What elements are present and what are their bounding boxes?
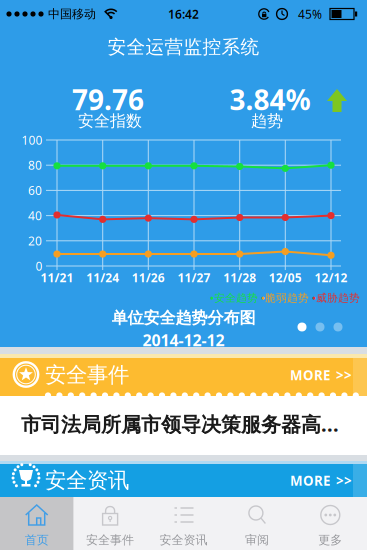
staticText: 2014-12-12 [142, 329, 224, 351]
staticText: 45% [298, 6, 322, 22]
staticText: 11/26 [132, 269, 165, 285]
staticText: 安全事件 [86, 533, 134, 547]
staticText: 首页 [25, 533, 49, 547]
staticText: 单位安全趋势分布图 [111, 308, 255, 328]
staticText: 安全资讯 [159, 533, 207, 547]
staticText: 79.76 [72, 81, 144, 118]
staticText: •威胁趋势 [312, 290, 360, 305]
button[interactable]: 首页 [0, 497, 73, 550]
staticText: 0 [35, 258, 42, 274]
staticText: 11/27 [177, 269, 210, 285]
staticText: MORE >> [290, 366, 352, 384]
button[interactable]: 审阅 [220, 497, 294, 550]
staticText: 11/21 [40, 269, 73, 285]
staticText: 中国移动 [48, 7, 96, 21]
staticText: 审阅 [245, 533, 269, 547]
button[interactable]: 安全资讯 [0, 464, 367, 497]
staticText: 16:42 [168, 6, 199, 22]
staticText: 11/24 [86, 269, 119, 285]
staticText: 12/12 [314, 269, 347, 285]
staticText: 安全运营监控系统 [107, 35, 259, 58]
staticText: 12/05 [269, 269, 302, 285]
staticText: MORE >> [290, 472, 352, 489]
staticText: 60 [28, 182, 42, 198]
staticText: 安全资讯 [45, 467, 129, 494]
staticText: 更多 [318, 533, 342, 547]
staticText: 市司法局所属市领导决策服务器高... [21, 411, 339, 437]
staticText: •脆弱趋势 [261, 290, 309, 305]
staticText: 安全指数 [78, 111, 142, 131]
button[interactable]: 市司法局所属市领导决策服务器高... [0, 396, 367, 456]
staticText: 安全事件 [45, 362, 129, 388]
staticText: 80 [28, 157, 42, 173]
staticText: 3.84% [229, 81, 310, 118]
staticText: •安全趋势 [210, 290, 258, 305]
staticText: 20 [28, 233, 42, 249]
staticText: 100 [21, 132, 42, 148]
button[interactable]: 安全资讯 [147, 497, 220, 550]
staticText: 40 [28, 208, 42, 223]
staticText: 趋势 [251, 111, 283, 131]
staticText: 11/28 [223, 269, 256, 285]
button[interactable]: 安全事件 [73, 497, 147, 550]
button[interactable]: 安全事件 [0, 358, 367, 396]
button[interactable]: 更多 [294, 497, 367, 550]
